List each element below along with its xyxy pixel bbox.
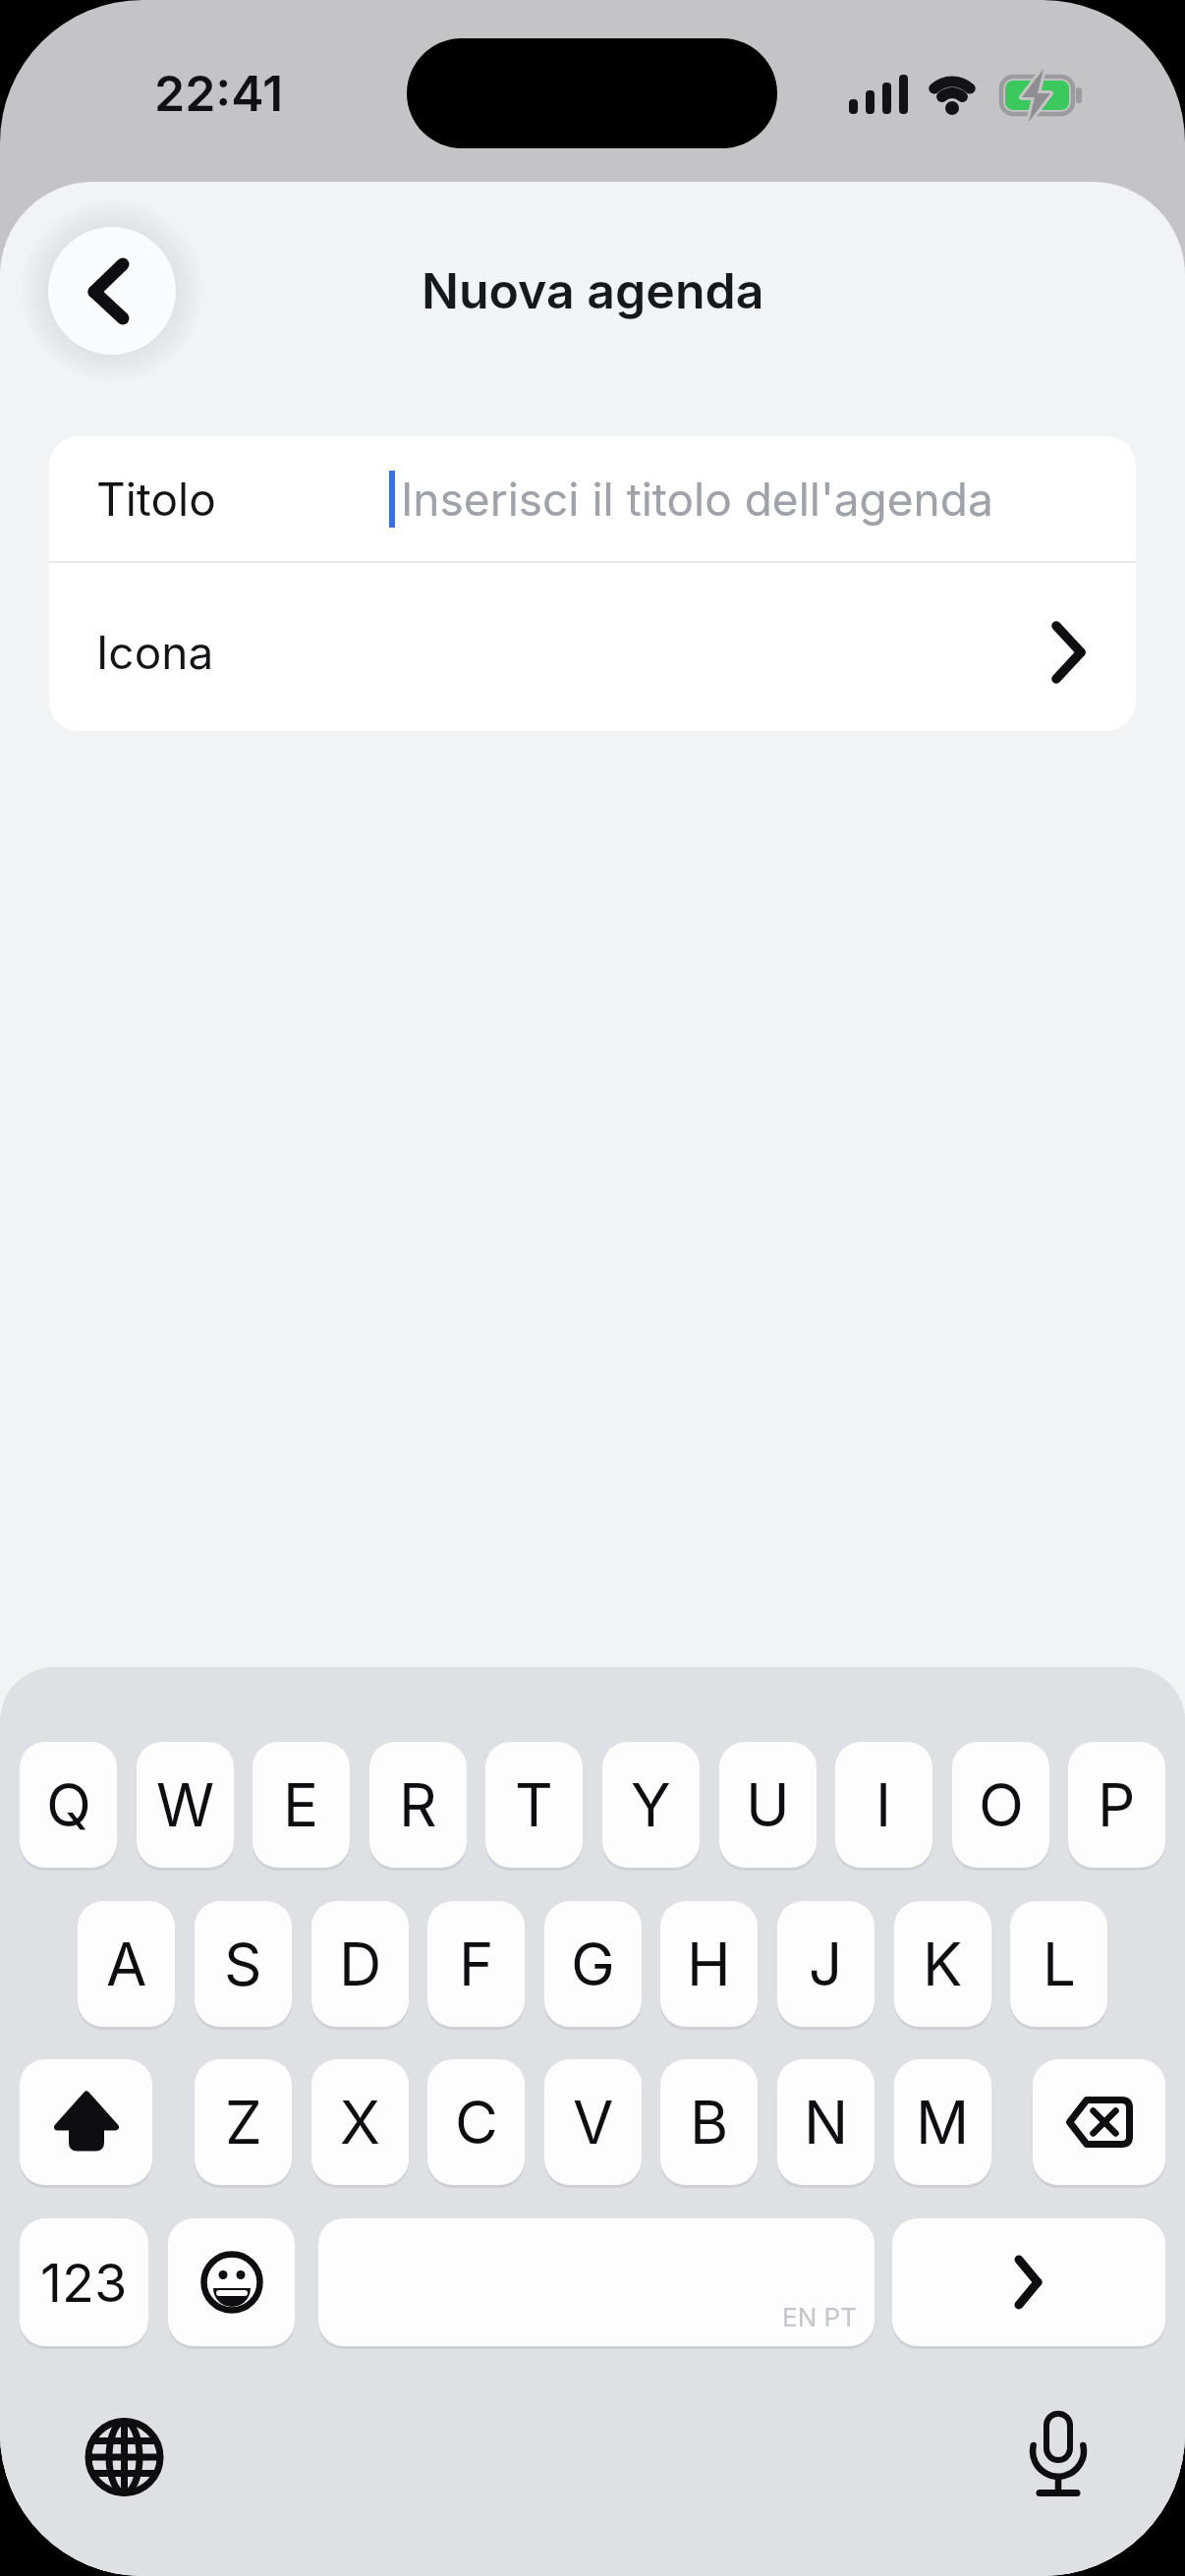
button[interactable]: T xyxy=(485,1742,583,1868)
button[interactable]: K xyxy=(894,1901,991,2027)
staticText: T xyxy=(515,1769,553,1841)
staticText: V xyxy=(573,2087,614,2158)
staticText: J xyxy=(809,1929,843,2000)
button[interactable]: V xyxy=(544,2059,642,2185)
button[interactable]: H xyxy=(660,1901,758,2027)
staticText: R xyxy=(399,1769,437,1841)
button[interactable]: J xyxy=(777,1901,875,2027)
button[interactable]: N xyxy=(777,2059,875,2185)
button[interactable]: C xyxy=(427,2059,525,2185)
button[interactable] xyxy=(168,2218,295,2346)
staticText: E xyxy=(283,1769,319,1841)
staticText: K xyxy=(923,1929,963,2000)
button[interactable]: S xyxy=(195,1901,292,2027)
staticText: Titolo xyxy=(96,472,216,527)
button[interactable]: 123 xyxy=(20,2218,148,2346)
staticText: F xyxy=(459,1929,494,2000)
staticText: G xyxy=(571,1929,615,2000)
staticText: O xyxy=(979,1769,1024,1841)
staticText: I xyxy=(875,1769,892,1841)
staticText: S xyxy=(224,1929,262,2000)
staticText: H xyxy=(687,1929,731,2000)
button[interactable]: M xyxy=(894,2059,991,2185)
staticText: Z xyxy=(225,2087,262,2158)
staticText: EN PT xyxy=(782,2302,857,2332)
staticText: B xyxy=(690,2087,729,2158)
button[interactable]: A xyxy=(78,1901,175,2027)
button[interactable]: Q xyxy=(20,1742,117,1868)
staticText: A xyxy=(106,1929,147,2000)
staticText: M xyxy=(916,2087,970,2158)
staticText: X xyxy=(340,2087,380,2158)
button[interactable]: Y xyxy=(602,1742,700,1868)
staticText: L xyxy=(1043,1929,1076,2000)
button[interactable]: L xyxy=(1010,1901,1107,2027)
staticText: Q xyxy=(46,1769,91,1841)
button[interactable] xyxy=(892,2218,1165,2346)
button[interactable]: I xyxy=(835,1742,932,1868)
button[interactable]: EN PT xyxy=(318,2218,875,2346)
staticText: U xyxy=(746,1769,790,1841)
button[interactable]: X xyxy=(311,2059,409,2185)
button[interactable]: Z xyxy=(195,2059,292,2185)
button[interactable]: P xyxy=(1068,1742,1165,1868)
button[interactable]: D xyxy=(311,1901,409,2027)
staticText: 22:41 xyxy=(154,64,284,123)
staticText: W xyxy=(156,1769,215,1841)
button[interactable] xyxy=(20,2059,152,2185)
button[interactable] xyxy=(48,227,176,355)
staticText: Inserisci il titolo dell'agenda xyxy=(401,472,993,527)
staticText: Nuova agenda xyxy=(422,261,764,320)
button[interactable]: F xyxy=(427,1901,525,2027)
button[interactable]: Titolo xyxy=(49,436,1136,561)
button[interactable]: U xyxy=(719,1742,817,1868)
staticText: P xyxy=(1098,1769,1136,1841)
button[interactable]: O xyxy=(952,1742,1049,1868)
staticText: Y xyxy=(631,1769,671,1841)
staticText: C xyxy=(455,2087,498,2158)
button[interactable]: E xyxy=(253,1742,350,1868)
staticText: D xyxy=(339,1929,382,2000)
staticText: N xyxy=(804,2087,849,2158)
button[interactable] xyxy=(1033,2059,1165,2185)
button[interactable]: W xyxy=(137,1742,234,1868)
staticText: Icona xyxy=(96,625,214,680)
button[interactable]: R xyxy=(369,1742,467,1868)
button[interactable]: G xyxy=(544,1901,642,2027)
staticText: 123 xyxy=(40,2251,128,2315)
button[interactable]: Icona xyxy=(49,563,1136,731)
button[interactable]: B xyxy=(660,2059,758,2185)
